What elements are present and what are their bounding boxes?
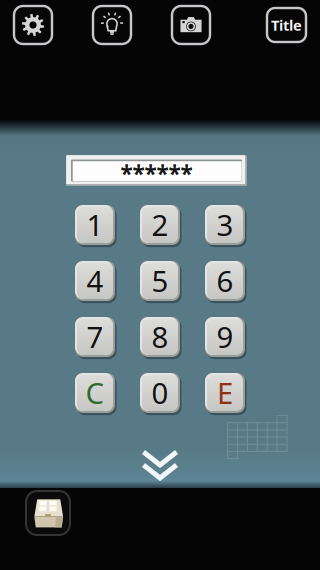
- button[interactable]: 5: [140, 261, 180, 301]
- button[interactable]: C: [75, 373, 115, 413]
- staticText: 8: [151, 317, 168, 356]
- staticText: 2: [151, 205, 168, 244]
- staticText: Title: [271, 15, 302, 35]
- staticText: 0: [151, 373, 168, 412]
- button[interactable]: 8: [140, 317, 180, 357]
- staticText: 1: [86, 205, 103, 244]
- staticText: 6: [216, 261, 233, 300]
- button[interactable]: Title: [267, 8, 306, 42]
- button[interactable]: E: [205, 373, 245, 413]
- staticText: E: [217, 373, 233, 412]
- button[interactable]: 0: [140, 373, 180, 413]
- button[interactable]: 9: [205, 317, 245, 357]
- button[interactable]: 2: [140, 205, 180, 245]
- staticText: 7: [86, 317, 103, 356]
- staticText: 5: [151, 261, 168, 300]
- staticText: ******: [120, 158, 192, 188]
- staticText: C: [85, 373, 104, 412]
- button[interactable]: Inventory: [26, 491, 70, 535]
- staticText: 4: [86, 261, 103, 300]
- button[interactable]: Camera: [172, 6, 210, 44]
- button[interactable]: 3: [205, 205, 245, 245]
- button[interactable]: 4: [75, 261, 115, 301]
- button[interactable]: Hint: [93, 6, 131, 44]
- button[interactable]: 1: [75, 205, 115, 245]
- staticText: 9: [216, 317, 233, 356]
- button[interactable]: Settings: [14, 6, 52, 44]
- button[interactable]: 6: [205, 261, 245, 301]
- button[interactable]: 7: [75, 317, 115, 357]
- staticText: 3: [216, 205, 233, 244]
